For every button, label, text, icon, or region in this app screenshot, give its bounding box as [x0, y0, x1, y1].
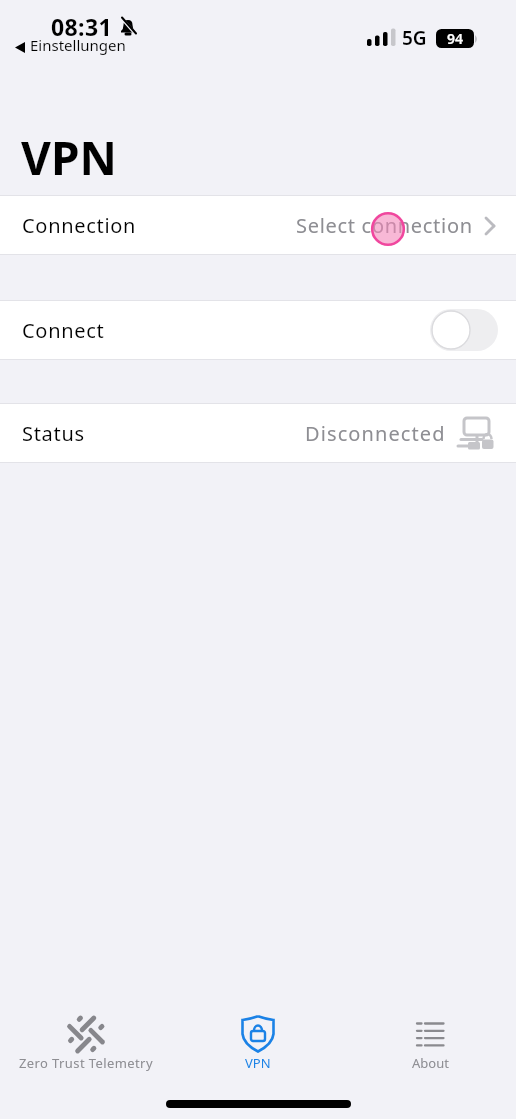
button[interactable]: Connection	[0, 196, 516, 254]
button[interactable]: Connect	[0, 301, 516, 359]
staticText: Select connection	[296, 212, 473, 239]
staticText: 5G	[402, 25, 427, 51]
staticText: Einstellungen	[30, 35, 126, 55]
staticText: About	[412, 1054, 449, 1072]
staticText: Connection	[22, 212, 137, 239]
button[interactable]: Status	[0, 404, 516, 462]
staticText: Connect	[22, 317, 105, 344]
staticText: 08:31	[51, 11, 113, 42]
button[interactable]	[430, 309, 498, 351]
staticText: 94	[447, 29, 464, 48]
button[interactable]: VPN	[172, 1014, 344, 1078]
button[interactable]: About	[344, 1014, 516, 1078]
staticText: VPN	[21, 126, 117, 189]
staticText: VPN	[245, 1054, 271, 1072]
staticText: Status	[22, 420, 85, 447]
staticText: Zero Trust Telemetry	[19, 1054, 153, 1072]
staticText: Disconnected	[305, 420, 446, 447]
button[interactable]: Zero Trust Telemetry	[0, 1014, 172, 1078]
